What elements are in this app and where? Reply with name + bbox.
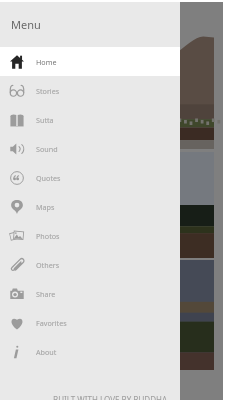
button[interactable]: Favorites — [0, 308, 180, 337]
staticText: Favorites — [36, 318, 67, 328]
button[interactable]: Maps — [0, 192, 180, 221]
staticText: Photos — [36, 231, 60, 241]
staticText: Maps — [36, 202, 55, 212]
staticText: Sound — [36, 144, 58, 154]
button[interactable]: Share — [0, 279, 180, 308]
button[interactable]: Others — [0, 250, 180, 279]
button[interactable]: About — [0, 337, 180, 366]
staticText: About — [36, 347, 57, 357]
button[interactable]: Quotes — [0, 163, 180, 192]
staticText: Quotes — [36, 173, 61, 183]
staticText: Sutta — [36, 115, 54, 125]
button[interactable]: Photos — [0, 221, 180, 250]
staticText: Others — [36, 260, 60, 270]
staticText: Stories — [36, 86, 60, 96]
button[interactable]: Sutta — [0, 105, 180, 134]
staticText: Menu — [11, 17, 41, 32]
button[interactable]: Sound — [0, 134, 180, 163]
button[interactable]: Stories — [0, 76, 180, 105]
staticText: BUILT WITH LOVE BY BUDDHA — [53, 394, 168, 400]
staticText: Share — [36, 289, 56, 299]
button[interactable]: Home — [0, 47, 180, 76]
staticText: Home — [36, 57, 57, 67]
